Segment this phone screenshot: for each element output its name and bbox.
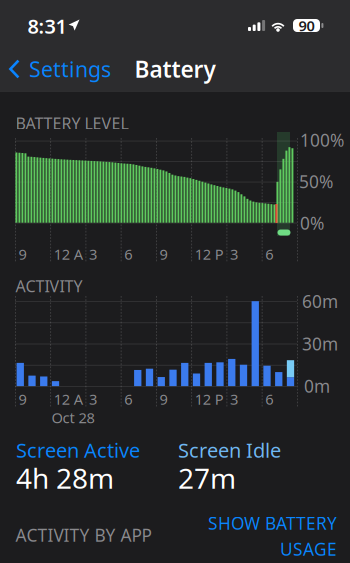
staticText: 3: [230, 244, 238, 264]
staticText: 6: [124, 244, 132, 264]
staticText: 3: [89, 389, 97, 409]
staticText: 9: [159, 244, 167, 264]
staticText: 50%: [299, 170, 333, 193]
staticText: 60m: [302, 290, 338, 313]
button[interactable]: Settings: [0, 49, 112, 89]
staticText: Screen Idle: [178, 437, 281, 463]
staticText: 4h 28m: [16, 459, 114, 497]
staticText: 27m: [178, 459, 236, 497]
staticText: 12 A: [54, 244, 83, 264]
staticText: 12 P: [195, 244, 224, 264]
staticText: 0m: [304, 375, 330, 398]
staticText: 6: [265, 244, 273, 264]
staticText: 30m: [302, 332, 338, 355]
staticText: Oct 28: [51, 408, 94, 427]
staticText: 12 P: [195, 389, 224, 409]
staticText: 3: [230, 389, 238, 409]
staticText: SHOW BATTERY: [208, 511, 337, 534]
staticText: 8:31: [27, 13, 66, 39]
staticText: 9: [18, 244, 26, 264]
staticText: 100%: [300, 128, 344, 151]
staticText: Screen Active: [16, 437, 140, 463]
staticText: 6: [265, 389, 273, 409]
staticText: 3: [89, 244, 97, 264]
staticText: ACTIVITY BY APP: [15, 523, 151, 546]
staticText: Battery: [134, 54, 215, 84]
staticText: ACTIVITY: [16, 275, 83, 297]
staticText: 9: [159, 389, 167, 409]
staticText: 0%: [300, 211, 324, 234]
staticText: 90: [298, 16, 314, 35]
staticText: 12 A: [54, 389, 83, 409]
staticText: 6: [124, 389, 132, 409]
button[interactable]: SHOW BATTERY: [197, 516, 337, 556]
staticText: BATTERY LEVEL: [16, 113, 129, 134]
staticText: USAGE: [280, 537, 337, 560]
staticText: 9: [18, 389, 26, 409]
staticText: Settings: [29, 55, 111, 83]
